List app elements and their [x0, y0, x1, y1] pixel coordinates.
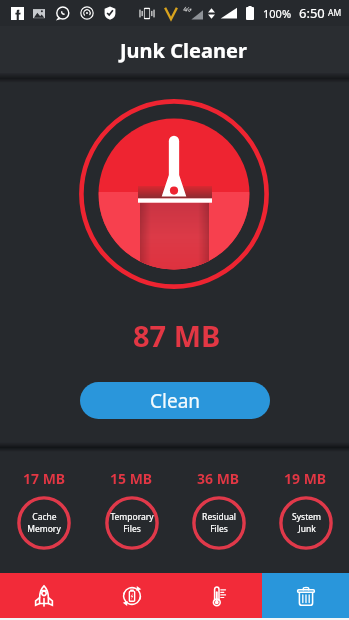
button[interactable]: 19 MB — [262, 449, 349, 573]
staticText: AM — [328, 7, 342, 19]
button[interactable] — [262, 573, 349, 618]
staticText: Cache — [32, 511, 57, 523]
staticText: Junk — [298, 523, 316, 535]
staticText: 15 MB — [110, 469, 153, 488]
staticText: 6:50 — [299, 4, 325, 22]
staticText: 87 MB — [133, 316, 221, 355]
staticText: Files — [210, 523, 228, 535]
button[interactable]: 15 MB — [88, 449, 175, 573]
staticText: Memory — [27, 523, 61, 535]
button[interactable] — [175, 573, 262, 618]
button[interactable]: 36 MB — [175, 449, 262, 573]
staticText: Clean — [150, 388, 201, 414]
button[interactable]: Clean — [80, 382, 270, 419]
staticText: Junk Cleaner — [120, 37, 247, 64]
staticText: Residual — [202, 511, 236, 523]
staticText: 17 MB — [23, 469, 66, 488]
button[interactable]: 17 MB — [0, 449, 88, 573]
staticText: 19 MB — [284, 469, 327, 488]
staticText: Files — [123, 523, 141, 535]
staticText: System — [292, 511, 321, 523]
staticText: 100% — [263, 6, 292, 21]
button[interactable] — [0, 573, 88, 618]
staticText: 36 MB — [197, 469, 240, 488]
staticText: Temporary — [110, 511, 154, 523]
button[interactable] — [88, 573, 175, 618]
